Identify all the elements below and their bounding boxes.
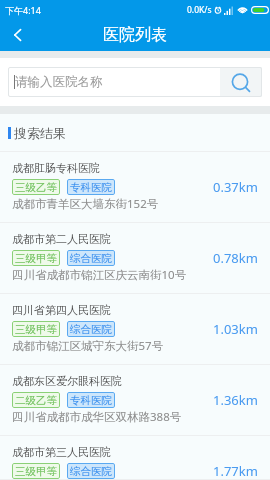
button[interactable]: 成都市第二人民医院 bbox=[0, 223, 270, 294]
staticText: 三级甲等 bbox=[15, 465, 57, 478]
staticText: 四川省成都市成华区双林路388号 bbox=[12, 409, 182, 425]
staticText: 下午4:14 bbox=[5, 4, 41, 16]
button[interactable]: 成都市第三人民医院 bbox=[0, 436, 270, 480]
staticText: 成都市第二人民医院 bbox=[12, 232, 111, 246]
staticText: 二级乙等 bbox=[15, 394, 57, 407]
staticText: 综合医院 bbox=[70, 465, 112, 478]
staticText: 三级甲等 bbox=[15, 323, 57, 336]
staticText: 综合医院 bbox=[70, 323, 112, 336]
staticText: 0.37km bbox=[213, 178, 258, 196]
staticText: 请输入医院名称 bbox=[15, 74, 103, 90]
staticText: 四川省第四人民医院 bbox=[12, 303, 111, 317]
staticText: 成都东区爱尔眼科医院 bbox=[12, 374, 122, 388]
button[interactable]: 成都肛肠专科医院 bbox=[0, 152, 270, 223]
staticText: 成都市第三人民医院 bbox=[12, 445, 111, 459]
staticText: 医院列表 bbox=[103, 25, 167, 45]
staticText: 1.77km bbox=[213, 462, 258, 479]
staticText: 三级甲等 bbox=[15, 252, 57, 265]
staticText: 0.78km bbox=[213, 249, 258, 267]
button[interactable]: 成都东区爱尔眼科医院 bbox=[0, 365, 270, 436]
staticText: 专科医院 bbox=[70, 181, 112, 194]
staticText: 0.0K/s bbox=[187, 4, 212, 16]
staticText: 成都市青羊区大墙东街152号 bbox=[12, 196, 159, 212]
staticText: 综合医院 bbox=[70, 252, 112, 265]
button[interactable]: 返回 bbox=[0, 19, 36, 51]
staticText: 专科医院 bbox=[70, 394, 112, 407]
staticText: 搜索结果 bbox=[14, 125, 66, 141]
staticText: 成都肛肠专科医院 bbox=[12, 161, 100, 175]
staticText: 四川省成都市锦江区庆云南街10号 bbox=[12, 267, 187, 283]
staticText: 1.36km bbox=[213, 391, 258, 409]
button[interactable]: 搜索 bbox=[220, 67, 262, 97]
button[interactable]: 四川省第四人民医院 bbox=[0, 294, 270, 365]
staticText: 三级乙等 bbox=[15, 181, 57, 194]
staticText: 1.03km bbox=[213, 320, 258, 338]
staticText: 成都市锦江区城守东大街57号 bbox=[12, 338, 164, 354]
